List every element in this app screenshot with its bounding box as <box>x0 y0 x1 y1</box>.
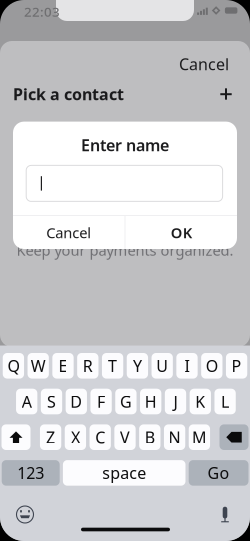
button[interactable]: A <box>16 389 37 414</box>
button[interactable]: OK <box>125 216 237 249</box>
button[interactable]: H <box>140 389 161 414</box>
button[interactable]: space <box>63 460 185 486</box>
staticText: K <box>195 391 205 412</box>
staticText: A <box>22 391 32 412</box>
staticText: Q <box>7 355 19 376</box>
button[interactable]: P <box>226 353 247 379</box>
button[interactable]: Emoji <box>13 502 37 526</box>
button[interactable]: F <box>90 389 112 414</box>
button[interactable]: Shift <box>1 424 30 450</box>
staticText: 22:03 <box>24 3 60 20</box>
button[interactable]: 123 <box>2 460 60 486</box>
staticText: Cancel <box>179 53 229 75</box>
button[interactable]: Dictation <box>213 502 237 526</box>
button[interactable]: E <box>52 353 74 379</box>
button[interactable]: K <box>190 389 211 414</box>
staticText: C <box>95 427 105 448</box>
staticText: Go <box>208 462 230 483</box>
button[interactable]: C <box>90 424 111 450</box>
staticText: U <box>156 355 168 376</box>
staticText: 123 <box>17 462 44 483</box>
button[interactable]: L <box>214 389 236 414</box>
staticText: X <box>71 427 80 448</box>
staticText: J <box>173 391 177 412</box>
button[interactable]: W <box>27 353 49 379</box>
button[interactable]: V <box>114 424 136 450</box>
button[interactable]: Z <box>40 424 61 450</box>
button[interactable]: T <box>102 353 123 379</box>
staticText: Cancel <box>46 223 91 242</box>
button[interactable]: I <box>176 353 198 379</box>
staticText: G <box>120 391 132 412</box>
button[interactable]: N <box>164 424 185 450</box>
button[interactable]: M <box>189 424 210 450</box>
button[interactable]: S <box>41 389 62 414</box>
button[interactable]: X <box>65 424 86 450</box>
button[interactable]: Y <box>127 353 148 379</box>
staticText: S <box>47 391 56 412</box>
button[interactable]: O <box>201 353 222 379</box>
staticText: R <box>83 355 93 376</box>
staticText: P <box>232 355 242 376</box>
staticText: D <box>70 391 82 412</box>
button[interactable]: Cancel <box>13 216 124 249</box>
staticText: Keep your payments organized. <box>16 240 233 260</box>
button[interactable]: J <box>165 389 186 414</box>
staticText: T <box>108 355 117 376</box>
button[interactable]: G <box>115 389 136 414</box>
staticText: I <box>184 355 189 376</box>
staticText: Enter name <box>81 134 169 156</box>
staticText: L <box>221 391 229 412</box>
button[interactable]: D <box>66 389 87 414</box>
staticText: H <box>145 391 157 412</box>
staticText: Y <box>133 355 142 376</box>
staticText: Pick a contact <box>13 83 124 105</box>
button[interactable]: Delete <box>219 424 248 450</box>
staticText: space <box>102 462 146 483</box>
staticText: W <box>31 355 46 376</box>
button[interactable]: U <box>152 353 173 379</box>
button[interactable]: Go <box>189 460 248 486</box>
staticText: B <box>145 427 155 448</box>
staticText: F <box>97 391 105 412</box>
staticText: V <box>120 427 130 448</box>
button[interactable]: Q <box>3 353 24 379</box>
staticText: N <box>169 427 181 448</box>
button[interactable]: Add contact <box>213 81 239 107</box>
staticText: Z <box>46 427 55 448</box>
button[interactable]: B <box>139 424 160 450</box>
button[interactable]: R <box>77 353 98 379</box>
staticText: O <box>206 355 218 376</box>
staticText: M <box>192 427 207 448</box>
button[interactable]: Cancel <box>176 53 232 75</box>
staticText: OK <box>171 223 192 242</box>
staticText: E <box>58 355 67 376</box>
